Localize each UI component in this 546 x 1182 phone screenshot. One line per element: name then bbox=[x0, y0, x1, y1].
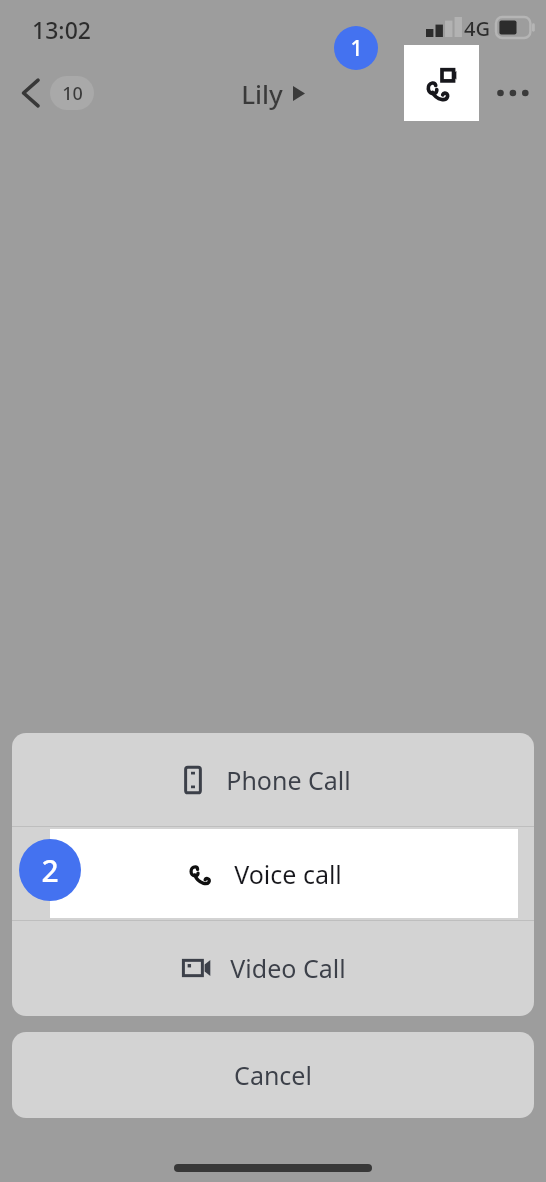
staticText: Lily bbox=[241, 76, 283, 111]
staticText: Voice call bbox=[234, 857, 342, 891]
staticText: Cancel bbox=[234, 1058, 312, 1092]
staticText: 10 bbox=[62, 81, 83, 106]
button[interactable]: Cancel bbox=[12, 1032, 534, 1118]
button[interactable]: Back bbox=[12, 68, 102, 118]
button[interactable]: More options bbox=[488, 67, 540, 119]
button[interactable]: Call bbox=[404, 45, 479, 121]
staticText: Video Call bbox=[230, 951, 346, 985]
button[interactable]: Phone Call bbox=[12, 733, 534, 826]
staticText: Phone Call bbox=[226, 763, 351, 797]
staticText: 4G bbox=[464, 15, 490, 42]
button[interactable]: Voice call bbox=[12, 827, 534, 920]
staticText: 1 bbox=[350, 34, 363, 63]
button[interactable]: Lily bbox=[233, 68, 313, 119]
staticText: 2 bbox=[41, 850, 59, 891]
staticText: 13:02 bbox=[32, 14, 91, 45]
button[interactable]: Video Call bbox=[12, 921, 534, 1014]
